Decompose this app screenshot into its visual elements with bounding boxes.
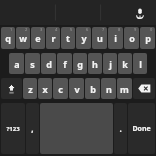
button[interactable]: d — [41, 53, 56, 74]
staticText: f — [63, 58, 67, 70]
staticText: ?123 — [6, 125, 20, 133]
button[interactable]: c — [53, 78, 68, 99]
staticText: 6 — [86, 27, 89, 32]
button[interactable]: p — [140, 27, 155, 49]
staticText: m — [120, 83, 129, 95]
staticText: 3 — [40, 27, 43, 32]
button[interactable]: i — [108, 27, 123, 49]
staticText: . — [119, 123, 122, 134]
staticText: n — [106, 83, 112, 95]
staticText: z — [28, 83, 33, 95]
button[interactable]: Comma — [26, 103, 39, 154]
button[interactable]: t — [61, 27, 75, 49]
staticText: c — [58, 83, 63, 95]
button[interactable]: ?123 — [1, 103, 25, 154]
button[interactable]: k — [118, 53, 132, 74]
button[interactable]: Delete — [133, 78, 155, 99]
staticText: k — [122, 58, 128, 70]
button[interactable]: y — [76, 27, 91, 49]
button[interactable]: s — [25, 53, 40, 74]
staticText: l — [139, 58, 142, 70]
staticText: 7 — [102, 27, 105, 32]
staticText: , — [31, 123, 34, 134]
button[interactable]: o — [124, 27, 139, 49]
button[interactable]: j — [103, 53, 117, 74]
staticText: 0 — [150, 27, 153, 32]
staticText: 9 — [134, 27, 137, 32]
button[interactable]: b — [85, 78, 100, 99]
staticText: p — [145, 32, 151, 44]
button[interactable]: e — [31, 27, 45, 49]
staticText: e — [35, 32, 41, 44]
button[interactable]: l — [133, 53, 147, 74]
button[interactable]: m — [117, 78, 132, 99]
staticText: d — [46, 58, 52, 70]
staticText: i — [114, 32, 117, 44]
button[interactable]: x — [38, 78, 52, 99]
staticText: u — [97, 32, 103, 44]
staticText: 2 — [25, 27, 28, 32]
button[interactable]: z — [23, 78, 37, 99]
button[interactable]: g — [73, 53, 87, 74]
staticText: s — [30, 58, 35, 70]
button[interactable]: u — [92, 27, 107, 49]
staticText: t — [66, 32, 70, 44]
staticText: b — [90, 83, 96, 95]
button[interactable]: h — [88, 53, 102, 74]
button[interactable]: q — [1, 27, 15, 49]
button[interactable]: Done — [128, 103, 155, 154]
staticText: x — [42, 83, 48, 95]
staticText: y — [81, 32, 87, 44]
staticText: w — [19, 32, 27, 44]
staticText: 4 — [55, 27, 58, 32]
button[interactable]: v — [69, 78, 84, 99]
button[interactable]: f — [57, 53, 72, 74]
staticText: q — [5, 32, 11, 44]
button[interactable]: Voice input — [133, 6, 147, 20]
staticText: a — [14, 58, 20, 70]
staticText: v — [74, 83, 80, 95]
button[interactable]: Shift — [1, 78, 22, 99]
button[interactable]: n — [101, 78, 116, 99]
staticText: o — [129, 32, 135, 44]
staticText: Done — [132, 124, 151, 134]
button[interactable]: Period — [114, 103, 127, 154]
staticText: h — [92, 58, 98, 70]
button[interactable]: r — [46, 27, 60, 49]
staticText: r — [51, 32, 56, 44]
staticText: 5 — [70, 27, 73, 32]
button[interactable]: w — [16, 27, 30, 49]
staticText: g — [77, 58, 83, 70]
staticText: 1 — [10, 27, 13, 32]
button[interactable]: a — [9, 53, 24, 74]
staticText: j — [109, 58, 112, 70]
staticText: 8 — [118, 27, 121, 32]
